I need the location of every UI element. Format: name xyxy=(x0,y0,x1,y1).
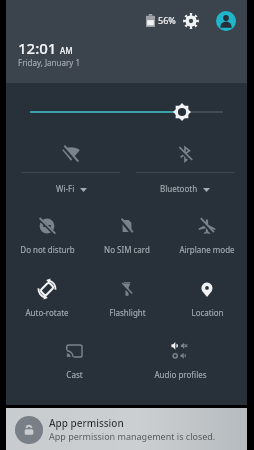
staticText: 12:01 xyxy=(18,38,57,58)
staticText: Airplane mode xyxy=(179,244,235,255)
button[interactable]: Location xyxy=(168,279,246,321)
staticText: App permission management is closed. xyxy=(49,430,216,442)
button[interactable]: Do not disturb xyxy=(8,216,86,258)
button[interactable]: No SIM card xyxy=(88,216,166,258)
button[interactable]: Airplane mode xyxy=(168,216,246,258)
staticText: Flashlight xyxy=(109,307,146,318)
button[interactable]: User account xyxy=(216,11,236,31)
button[interactable]: Flashlight xyxy=(88,279,166,321)
staticText: Bluetooth xyxy=(160,183,198,194)
staticText: 56% xyxy=(158,14,176,26)
staticText: Location xyxy=(191,307,224,318)
staticText: Friday, January 1 xyxy=(18,57,80,68)
staticText: Audio profiles xyxy=(154,369,207,380)
staticText: Do not disturb xyxy=(20,244,75,255)
staticText: Wi-Fi xyxy=(56,183,75,194)
staticText: AM xyxy=(60,45,73,56)
staticText: Auto-rotate xyxy=(25,307,69,318)
button[interactable]: Auto-rotate xyxy=(8,279,86,321)
button[interactable]: Settings xyxy=(181,11,201,31)
button[interactable]: Bluetooth xyxy=(127,128,248,198)
button[interactable]: Audio profiles xyxy=(141,341,219,383)
button[interactable]: Cast xyxy=(35,341,113,383)
staticText: App permission xyxy=(49,416,124,430)
button[interactable]: App permission xyxy=(6,408,247,450)
button[interactable]: Wi-Fi xyxy=(6,128,127,198)
staticText: Cast xyxy=(66,369,83,380)
staticText: No SIM card xyxy=(104,244,150,255)
